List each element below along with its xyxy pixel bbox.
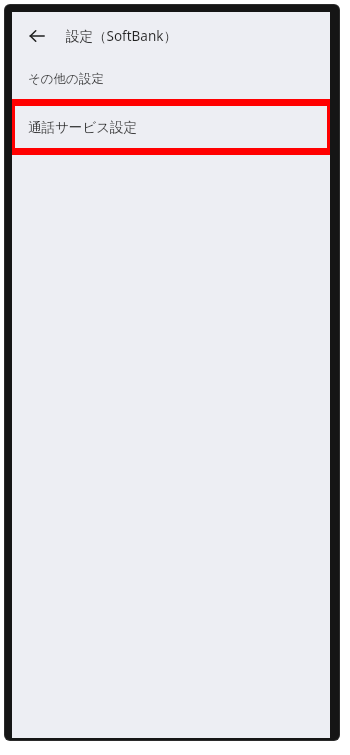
button[interactable]: 通話サービス設定 xyxy=(15,106,327,148)
staticText: その他の設定 xyxy=(28,71,104,87)
button[interactable]: その他の設定 xyxy=(12,59,330,99)
staticText: 設定（SoftBank） xyxy=(66,27,177,45)
button[interactable]: Back xyxy=(21,20,53,52)
staticText: 通話サービス設定 xyxy=(28,119,137,136)
